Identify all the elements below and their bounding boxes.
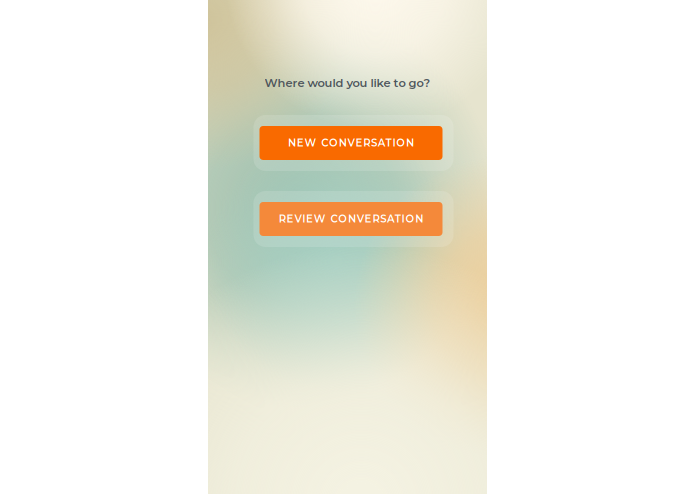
button[interactable]: NEW CONVERSATION [259,126,442,160]
staticText: REVIEW CONVERSATION [279,213,423,225]
staticText: NEW CONVERSATION [288,137,414,149]
staticText: Where would you like to go? [264,76,430,90]
button[interactable]: REVIEW CONVERSATION [259,202,442,236]
